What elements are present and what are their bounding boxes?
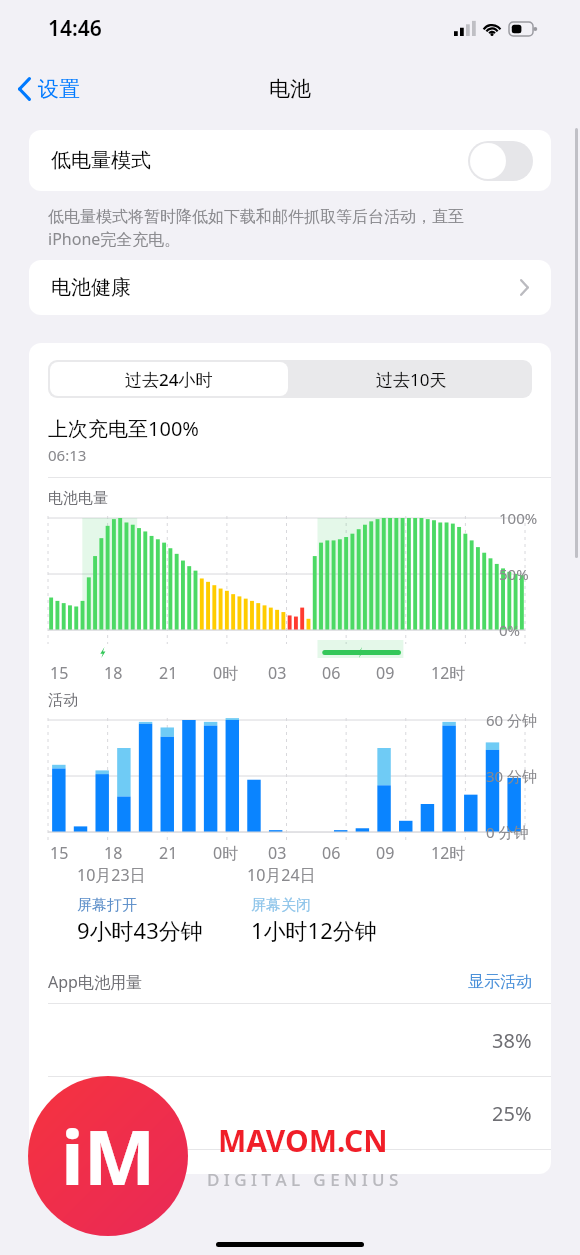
staticText: 过去10天 [376,368,447,391]
staticText: 50% [499,564,529,584]
staticText: 10月23日 [77,864,146,886]
staticText: 上次充电至100% [48,415,199,442]
button[interactable]: 设置 [14,70,84,108]
staticText: 0% [499,620,521,640]
staticText: 21 [159,662,178,684]
staticText: 09 [376,662,395,684]
staticText: 低电量模式将暂时降低如下载和邮件抓取等后台活动，直至 iPhone完全充电。 [48,207,464,250]
staticText: 9小时43分钟 [77,915,203,945]
button[interactable]: 显示活动 [468,972,532,992]
staticText: 25% [492,1100,532,1127]
staticText: 60 分钟 [486,710,538,730]
staticText: 设置 [38,76,80,102]
staticText: 显示活动 [468,972,532,992]
staticText: 1小时12分钟 [251,915,377,945]
staticText: 低电量模式 [51,148,151,173]
staticText: 18 [104,662,123,684]
staticText: D I G I T A L G E N I U S [207,1168,399,1191]
staticText: 过去24小时 [125,368,213,391]
staticText: 电池电量 [48,489,108,508]
button[interactable]: 38% [29,1004,551,1076]
staticText: 30 分钟 [486,766,538,786]
staticText: 03 [268,842,287,864]
staticText: 活动 [48,691,78,710]
staticText: 06 [322,842,341,864]
staticText: 15 [50,662,69,684]
staticText: 0时 [213,842,239,864]
staticText: 12时 [431,662,466,684]
staticText: 06:13 [48,445,87,465]
button[interactable]: 低电量模式 [29,130,551,191]
staticText: 14:46 [48,14,102,43]
staticText: 100% [499,508,538,528]
staticText: MAVOM.CN [218,1120,388,1161]
button[interactable]: 过去10天 [290,360,532,398]
staticText: iM [61,1104,156,1208]
staticText: 0时 [213,662,239,684]
staticText: 06 [322,662,341,684]
staticText: 屏幕关闭 [251,896,311,915]
staticText: 21 [159,842,178,864]
button[interactable]: 过去24小时 [50,362,288,396]
staticText: 03 [268,662,287,684]
staticText: 09 [376,842,395,864]
button[interactable]: 25% [29,1077,551,1149]
button[interactable]: 低电量模式开关 [468,141,533,181]
staticText: 屏幕打开 [77,896,137,915]
staticText: 0 分钟 [486,822,529,842]
button[interactable]: 电池健康 [29,260,551,315]
staticText: 电池 [269,76,311,102]
staticText: 15 [50,842,69,864]
staticText: 电池健康 [51,275,131,300]
staticText: 38% [492,1027,532,1054]
staticText: 12时 [431,842,466,864]
staticText: 18 [104,842,123,864]
staticText: 10月24日 [247,864,316,886]
staticText: App电池用量 [48,971,142,993]
